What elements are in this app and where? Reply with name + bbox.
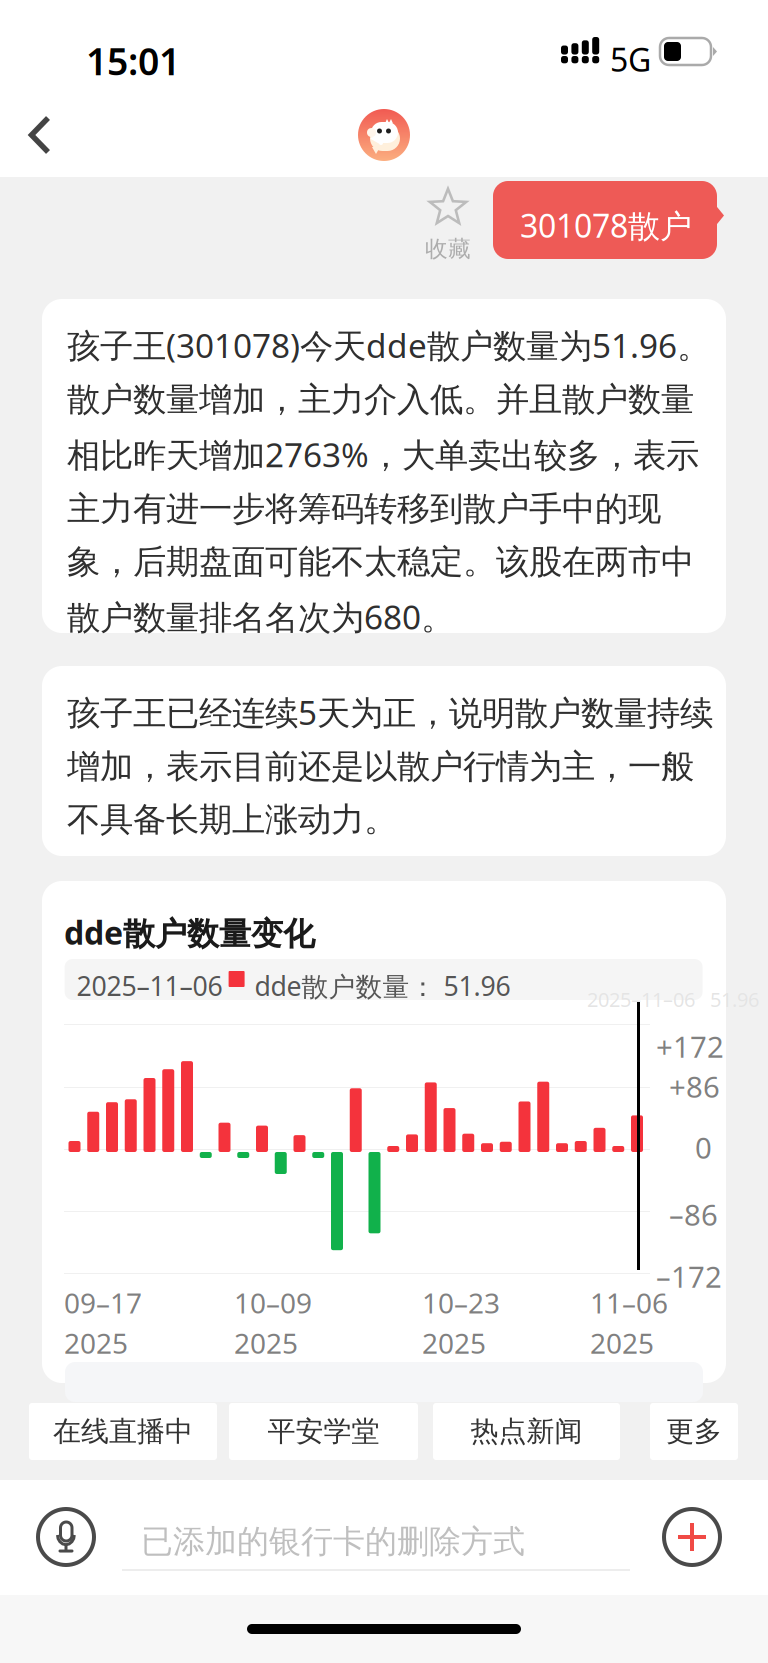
staticText: 已添加的银行卡的删除方式 — [141, 1522, 525, 1561]
staticText: –172 — [656, 1257, 722, 1296]
button[interactable]: Add — [655, 1500, 729, 1574]
staticText: 10–23 — [422, 1284, 500, 1321]
staticText: 2025 — [422, 1324, 486, 1361]
staticText: 09–17 — [64, 1284, 142, 1321]
staticText: 0 — [695, 1128, 712, 1167]
button[interactable]: Voice input — [29, 1500, 103, 1574]
button[interactable]: 在线直播中 — [29, 1403, 217, 1460]
staticText: 11–06 — [590, 1284, 668, 1321]
staticText: 收藏 — [425, 235, 471, 263]
staticText: dde散户数量： 51.96 — [255, 968, 511, 1004]
button[interactable]: 更多 — [650, 1403, 738, 1460]
staticText: 2025–11–06 — [77, 968, 223, 1003]
staticText: 2025 — [64, 1324, 128, 1361]
staticText: –86 — [669, 1195, 718, 1234]
staticText: 孩子王(301078)今天dde散户数量为51.96。散户数量增加，主力介入低。… — [67, 323, 710, 639]
staticText: 2025–11–06 51.96 — [587, 986, 759, 1013]
staticText: 平安学堂 — [267, 1414, 379, 1449]
staticText: +86 — [669, 1067, 720, 1106]
staticText: 15:01 — [86, 36, 180, 86]
button[interactable]: Back — [0, 96, 80, 172]
staticText: 5G — [610, 38, 651, 80]
staticText: +172 — [656, 1027, 724, 1066]
button[interactable]: 收藏 — [408, 181, 492, 259]
staticText: 更多 — [666, 1414, 722, 1449]
staticText: 孩子王已经连续5天为正，说明散户数量持续增加，表示目前还是以散户行情为主，一般不… — [67, 690, 713, 840]
staticText: 301078散户 — [520, 204, 692, 246]
staticText: 在线直播中 — [53, 1414, 193, 1449]
staticText: 热点新闻 — [470, 1414, 582, 1449]
staticText: dde散户数量变化 — [64, 911, 315, 954]
staticText: 2025 — [590, 1324, 654, 1361]
button[interactable]: 热点新闻 — [433, 1403, 620, 1460]
staticText: 2025 — [234, 1324, 298, 1361]
button[interactable]: 平安学堂 — [229, 1403, 418, 1460]
staticText: 10–09 — [234, 1284, 312, 1321]
